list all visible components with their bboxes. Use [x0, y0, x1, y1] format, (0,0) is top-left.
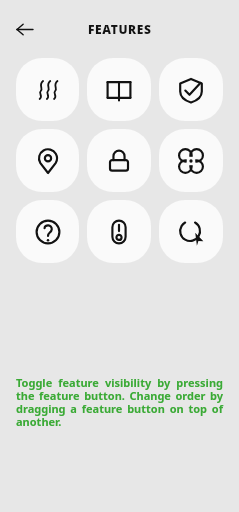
- button[interactable]: Power: [87, 200, 151, 263]
- button[interactable]: Back: [6, 11, 42, 47]
- button[interactable]: Location: [16, 129, 79, 192]
- button[interactable]: Fan: [159, 129, 223, 192]
- button[interactable]: Security: [159, 58, 223, 121]
- staticText: Toggle feature visibility by pressing th…: [16, 375, 223, 430]
- button[interactable]: Lock: [87, 129, 151, 192]
- button[interactable]: Help: [16, 200, 79, 263]
- button[interactable]: Heat: [16, 58, 79, 121]
- button[interactable]: Manual: [87, 58, 151, 121]
- button[interactable]: Reset: [159, 200, 223, 263]
- staticText: FEATURES: [88, 21, 152, 37]
